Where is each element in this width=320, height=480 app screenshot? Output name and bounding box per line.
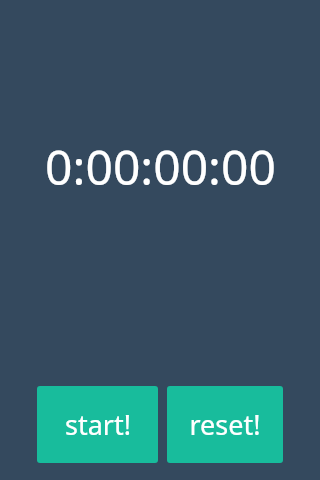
staticText: reset! — [189, 406, 261, 443]
staticText: 0:00:00:00 — [45, 134, 276, 199]
button[interactable]: reset! — [167, 386, 283, 463]
button[interactable]: start! — [37, 386, 158, 463]
staticText: start! — [65, 406, 131, 443]
